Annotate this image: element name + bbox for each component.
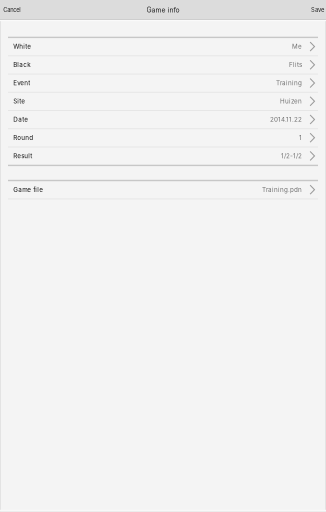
button[interactable]: Date: [0, 111, 326, 128]
button[interactable]: Game file: [0, 181, 326, 198]
staticText: Result: [13, 152, 32, 160]
staticText: Training.pdn: [262, 186, 302, 193]
staticText: White: [13, 43, 31, 50]
staticText: Save: [311, 6, 324, 13]
button[interactable]: Site: [0, 93, 326, 110]
button[interactable]: Round: [0, 129, 326, 146]
button[interactable]: Save: [308, 0, 326, 20]
staticText: Date: [13, 116, 28, 123]
staticText: 2014.11.22: [270, 116, 302, 123]
staticText: Me: [292, 43, 302, 50]
staticText: Site: [13, 97, 25, 105]
staticText: Game info: [146, 6, 179, 14]
staticText: Training: [276, 79, 302, 87]
staticText: 1: [299, 134, 302, 141]
staticText: Game file: [13, 186, 43, 193]
staticText: Cancel: [3, 6, 20, 13]
button[interactable]: Black: [0, 56, 326, 73]
staticText: Round: [13, 134, 33, 141]
button[interactable]: White: [0, 38, 326, 55]
staticText: 1/2-1/2: [281, 152, 302, 160]
staticText: Huizen: [280, 97, 302, 105]
staticText: Event: [13, 79, 30, 87]
staticText: Flits: [289, 61, 302, 69]
button[interactable]: Cancel: [0, 0, 23, 20]
button[interactable]: Result: [0, 147, 326, 165]
staticText: Black: [13, 61, 30, 69]
button[interactable]: Event: [0, 75, 326, 92]
